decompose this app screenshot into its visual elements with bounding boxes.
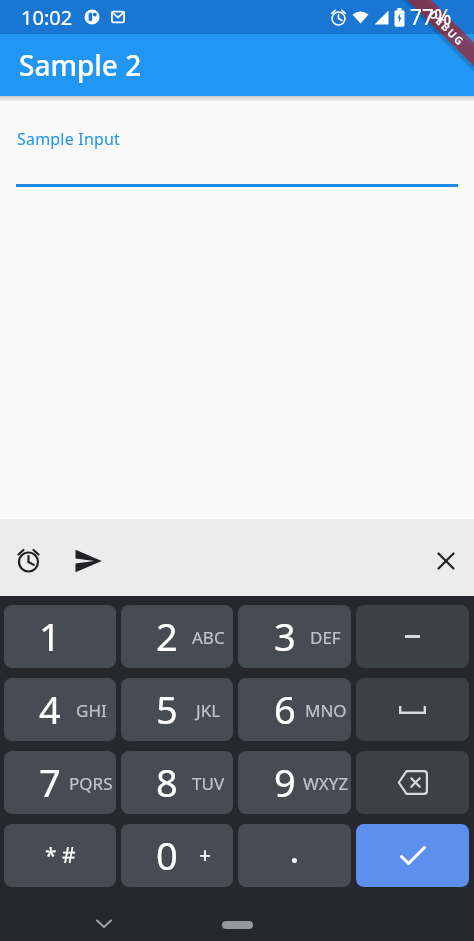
staticText: MNO [305,699,347,722]
staticText: 10:02 [21,4,73,31]
button[interactable] [437,552,455,570]
staticText: TUV [192,772,225,795]
staticText: 8 [156,756,178,808]
button[interactable]: 4 [4,678,116,741]
button[interactable]: 0 [121,824,233,887]
staticText: 5 [156,683,178,735]
staticText: 0 [156,829,178,881]
button[interactable]: 5 [121,678,233,741]
button[interactable] [96,919,112,929]
button[interactable]: 1 [4,605,116,668]
button[interactable] [356,605,469,668]
staticText: * # [45,841,76,870]
staticText: DEF [310,626,341,649]
button[interactable] [356,678,469,741]
staticText: 9 [274,756,296,808]
button[interactable] [73,546,103,576]
staticText: Sample Input [17,128,121,150]
staticText: 7 [39,756,61,808]
staticText: 1 [39,610,61,662]
button[interactable]: 2 [121,605,233,668]
staticText: + [199,841,212,870]
button[interactable]: 8 [121,751,233,814]
staticText: 3 [274,610,296,662]
button[interactable]: 9 [238,751,351,814]
button[interactable]: 3 [238,605,351,668]
staticText: 4 [39,683,61,735]
button[interactable] [356,751,469,814]
staticText: PQRS [69,772,113,795]
staticText: Sample 2 [19,46,142,84]
button[interactable] [238,824,351,887]
button[interactable]: 6 [238,678,351,741]
button[interactable]: * # [4,824,116,887]
staticText: 2 [156,610,178,662]
staticText: DEBUG [426,7,468,49]
button[interactable] [222,921,253,929]
staticText: 6 [274,683,296,735]
staticText: WXYZ [303,772,349,795]
button[interactable]: 7 [4,751,116,814]
staticText: GHI [76,699,107,722]
staticText: ABC [192,626,225,649]
staticText: 77% [410,3,452,32]
button[interactable] [356,824,469,887]
staticText: JKL [196,699,221,722]
button[interactable] [16,548,41,573]
